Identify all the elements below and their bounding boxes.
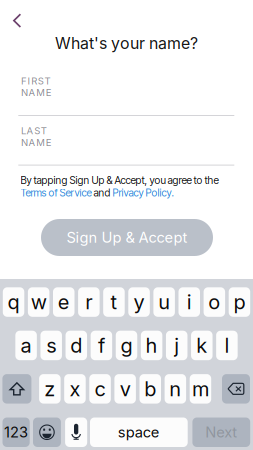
button[interactable]: Delete	[222, 374, 250, 404]
staticText: k	[196, 333, 207, 358]
button[interactable]: i	[178, 287, 200, 317]
button[interactable]: g	[116, 331, 137, 360]
staticText: and	[92, 187, 113, 199]
staticText: f	[98, 333, 105, 358]
staticText: v	[120, 377, 131, 401]
button[interactable]: Back	[6, 8, 30, 33]
button[interactable]: Next	[192, 417, 250, 447]
button[interactable]: Dictate	[65, 417, 87, 447]
staticText: Sign Up & Accept	[66, 229, 187, 246]
staticText: g	[120, 333, 132, 358]
staticText: 123	[4, 423, 28, 441]
staticText: d	[70, 333, 82, 358]
button[interactable]: q	[3, 287, 24, 317]
staticText: t	[110, 290, 117, 314]
staticText: What's your name?	[55, 34, 198, 53]
staticText: s	[46, 333, 56, 358]
staticText: LAST NAME	[21, 125, 82, 137]
button[interactable]: y	[128, 287, 150, 317]
button[interactable]: space	[90, 417, 188, 447]
button[interactable]: r	[78, 287, 100, 317]
button[interactable]: z	[39, 374, 61, 404]
button[interactable]: Emoji	[33, 417, 61, 447]
button[interactable]: b	[139, 374, 161, 404]
button[interactable]: e	[53, 287, 74, 317]
button[interactable]: j	[166, 331, 187, 360]
button[interactable]: u	[153, 287, 175, 317]
button[interactable]: Shift	[2, 374, 31, 404]
button[interactable]: Sign Up & Accept	[41, 219, 213, 256]
button[interactable]: c	[89, 374, 111, 404]
staticText: u	[158, 290, 170, 314]
button[interactable]: o	[204, 287, 225, 317]
staticText: a	[21, 333, 32, 358]
button[interactable]: t	[103, 287, 125, 317]
staticText: e	[58, 290, 70, 314]
button[interactable]: x	[64, 374, 86, 404]
staticText: h	[146, 333, 158, 358]
staticText: l	[224, 333, 229, 358]
button[interactable]: Privacy Policy.	[113, 187, 174, 199]
staticText: i	[187, 290, 192, 314]
staticText: By tapping Sign Up & Accept, you agree t…	[21, 174, 219, 186]
button[interactable]: h	[141, 331, 162, 360]
staticText: r	[85, 290, 92, 314]
staticText: z	[44, 377, 55, 401]
staticText: Next	[205, 423, 237, 441]
staticText: q	[7, 290, 19, 314]
staticText: n	[169, 377, 181, 401]
button[interactable]: s	[40, 331, 62, 360]
staticText: FIRST NAME	[21, 75, 86, 87]
staticText: space	[118, 423, 160, 441]
button[interactable]: a	[15, 331, 37, 360]
button[interactable]: n	[165, 374, 186, 404]
staticText: w	[31, 290, 47, 314]
staticText: x	[69, 377, 80, 401]
button[interactable]: m	[190, 374, 211, 404]
button[interactable]: w	[28, 287, 49, 317]
button[interactable]: f	[91, 331, 112, 360]
staticText: y	[134, 290, 145, 314]
staticText: o	[208, 290, 220, 314]
button[interactable]: p	[229, 287, 250, 317]
button[interactable]: k	[191, 331, 213, 360]
button[interactable]: d	[65, 331, 87, 360]
button[interactable]: Terms of Service	[21, 187, 92, 199]
button[interactable]: v	[114, 374, 136, 404]
staticText: j	[174, 333, 179, 358]
staticText: c	[95, 377, 106, 401]
button[interactable]: Numbers	[2, 417, 30, 447]
staticText: Privacy Policy.	[113, 187, 174, 199]
staticText: b	[144, 377, 156, 401]
staticText: p	[233, 290, 245, 314]
staticText: m	[192, 377, 209, 401]
staticText: Terms of Service	[21, 187, 92, 199]
button[interactable]: l	[216, 331, 238, 360]
